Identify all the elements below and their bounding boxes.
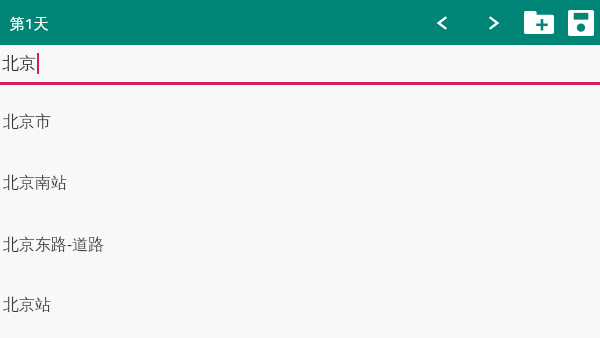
- staticText: 北京: [2, 53, 36, 74]
- button[interactable]: 北京南站: [0, 152, 600, 213]
- button[interactable]: Previous day: [420, 0, 464, 45]
- button[interactable]: 北京站: [0, 274, 600, 335]
- staticText: 第1天: [10, 13, 49, 33]
- staticText: 北京站: [3, 295, 51, 315]
- button[interactable]: Next day: [472, 0, 516, 45]
- button[interactable]: 北京东路-道路: [0, 213, 600, 274]
- staticText: 北京市: [3, 112, 51, 132]
- button[interactable]: Create folder: [516, 0, 562, 45]
- staticText: 北京南站: [3, 173, 67, 193]
- button[interactable]: 北京: [0, 45, 600, 82]
- button[interactable]: 北京市: [0, 91, 600, 152]
- staticText: 北京东路-道路: [3, 233, 105, 255]
- button[interactable]: Save: [562, 0, 600, 45]
